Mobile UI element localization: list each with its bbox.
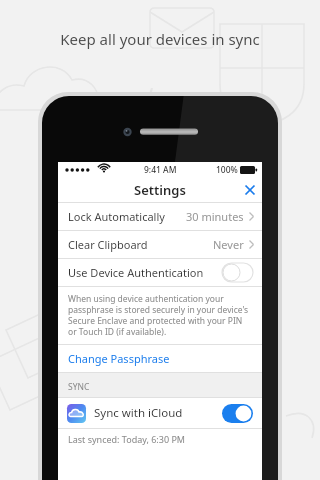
button[interactable]: Use Device Authentication bbox=[58, 259, 262, 286]
staticText: Sync with iCloud bbox=[94, 405, 183, 421]
button[interactable]: Toggle off bbox=[222, 263, 253, 282]
staticText: Keep all your devices in sync bbox=[0, 29, 320, 49]
staticText: 100% bbox=[216, 164, 238, 176]
button[interactable]: Toggle on bbox=[222, 404, 253, 423]
button[interactable]: Clear Clipboard bbox=[58, 231, 262, 258]
staticText: Last synced: Today, 6:30 PM bbox=[68, 433, 186, 445]
staticText: Lock Automatically bbox=[68, 209, 165, 224]
staticText: When using device authentication your pa… bbox=[68, 293, 252, 337]
staticText: Use Device Authentication bbox=[68, 265, 204, 280]
staticText: 30 minutes bbox=[186, 209, 244, 224]
staticText: 9:41 AM bbox=[144, 164, 177, 176]
button[interactable]: Lock Automatically bbox=[58, 203, 262, 230]
button[interactable]: Change Passphrase bbox=[58, 345, 262, 372]
staticText: Change Passphrase bbox=[68, 351, 170, 366]
staticText: Clear Clipboard bbox=[68, 237, 148, 252]
staticText: Never bbox=[213, 237, 244, 252]
staticText: SYNC bbox=[68, 381, 90, 393]
button[interactable]: Close bbox=[238, 178, 262, 202]
button[interactable]: Sync with iCloud bbox=[58, 398, 262, 428]
staticText: Settings bbox=[134, 181, 186, 199]
